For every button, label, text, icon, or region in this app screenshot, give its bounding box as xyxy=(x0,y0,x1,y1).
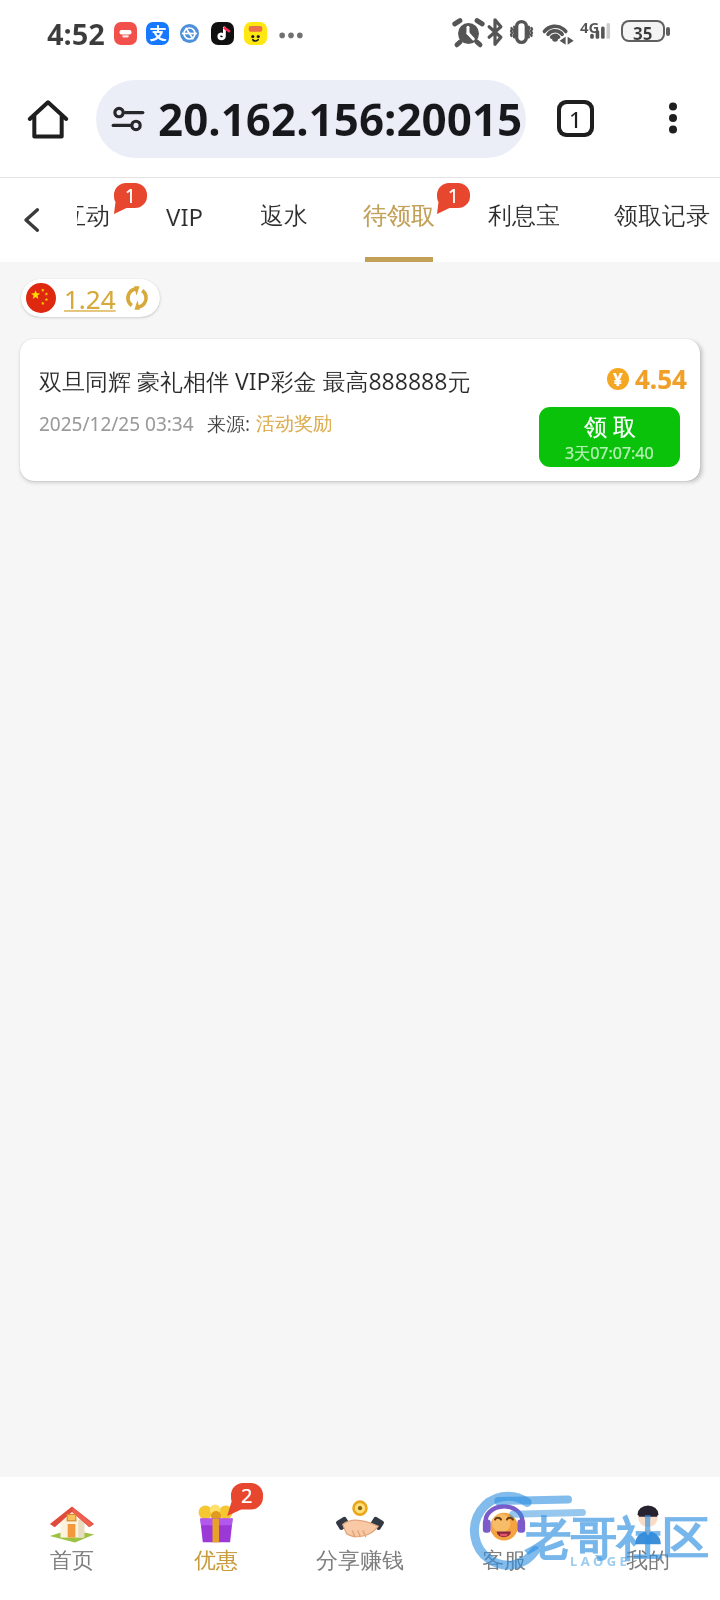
staticText: 领取记录 xyxy=(614,201,710,231)
staticText: 分享赚钱 xyxy=(316,1547,404,1575)
staticText: ¥ xyxy=(613,368,623,390)
staticText: 返水 xyxy=(260,201,308,231)
staticText: 1 xyxy=(448,183,459,209)
button[interactable]: 分享赚钱 xyxy=(288,1477,432,1600)
staticText: 35 xyxy=(633,22,653,40)
button[interactable]: 待领取 xyxy=(347,178,451,262)
staticText: 优惠 xyxy=(194,1547,238,1575)
button[interactable]: 领 取 xyxy=(539,407,680,467)
staticText: 双旦同辉 豪礼相伴 VIP彩金 最高888888元 xyxy=(39,365,471,396)
button[interactable]: 1.24 xyxy=(21,279,160,317)
button[interactable]: 返水 xyxy=(244,178,324,262)
staticText: 20.162.156:20015 xyxy=(158,89,523,149)
staticText: L A O G E xyxy=(570,1552,627,1570)
button[interactable]: 互动 xyxy=(60,178,120,262)
button[interactable]: 客服 xyxy=(432,1477,576,1600)
staticText: 4:52 xyxy=(47,14,105,53)
button[interactable]: More options xyxy=(640,85,706,151)
button[interactable]: 利息宝 xyxy=(472,178,576,262)
staticText: 2025/12/25 03:34 xyxy=(39,411,194,437)
button[interactable]: 领取记录 xyxy=(598,178,720,262)
staticText: 来源: xyxy=(207,411,251,437)
staticText: 支 xyxy=(150,24,166,44)
staticText: 活动奖励 xyxy=(256,412,332,436)
staticText: VIP xyxy=(166,200,204,233)
button[interactable]: 20.162.156:20015 xyxy=(96,80,526,158)
button[interactable]: 首页 xyxy=(0,1477,144,1600)
staticText: 1.24 xyxy=(64,281,116,316)
staticText: 待领取 xyxy=(363,201,435,231)
staticText: 1 xyxy=(125,183,136,209)
button[interactable]: 我的 xyxy=(576,1477,720,1600)
button[interactable]: Tabs xyxy=(542,85,608,151)
button[interactable]: 2 xyxy=(144,1477,288,1600)
staticText: 1 xyxy=(569,104,582,133)
staticText: 客服 xyxy=(482,1547,526,1575)
staticText: 首页 xyxy=(50,1547,94,1575)
button[interactable]: VIP xyxy=(133,178,237,262)
staticText: 4.54 xyxy=(635,361,687,396)
button[interactable]: Home xyxy=(14,85,82,153)
staticText: 3天07:07:40 xyxy=(565,442,654,464)
staticText: 2 xyxy=(241,1482,253,1509)
staticText: 4G xyxy=(580,17,600,37)
staticText: 我的 xyxy=(626,1547,670,1575)
staticText: 互动 xyxy=(62,201,110,231)
staticText: 利息宝 xyxy=(488,201,560,231)
staticText: 老哥社区 xyxy=(524,1511,708,1569)
button[interactable]: 双旦同辉 豪礼相伴 VIP彩金 最高888888元 xyxy=(20,339,700,481)
button[interactable]: Back xyxy=(4,178,60,262)
staticText: 领 取 xyxy=(584,410,636,441)
